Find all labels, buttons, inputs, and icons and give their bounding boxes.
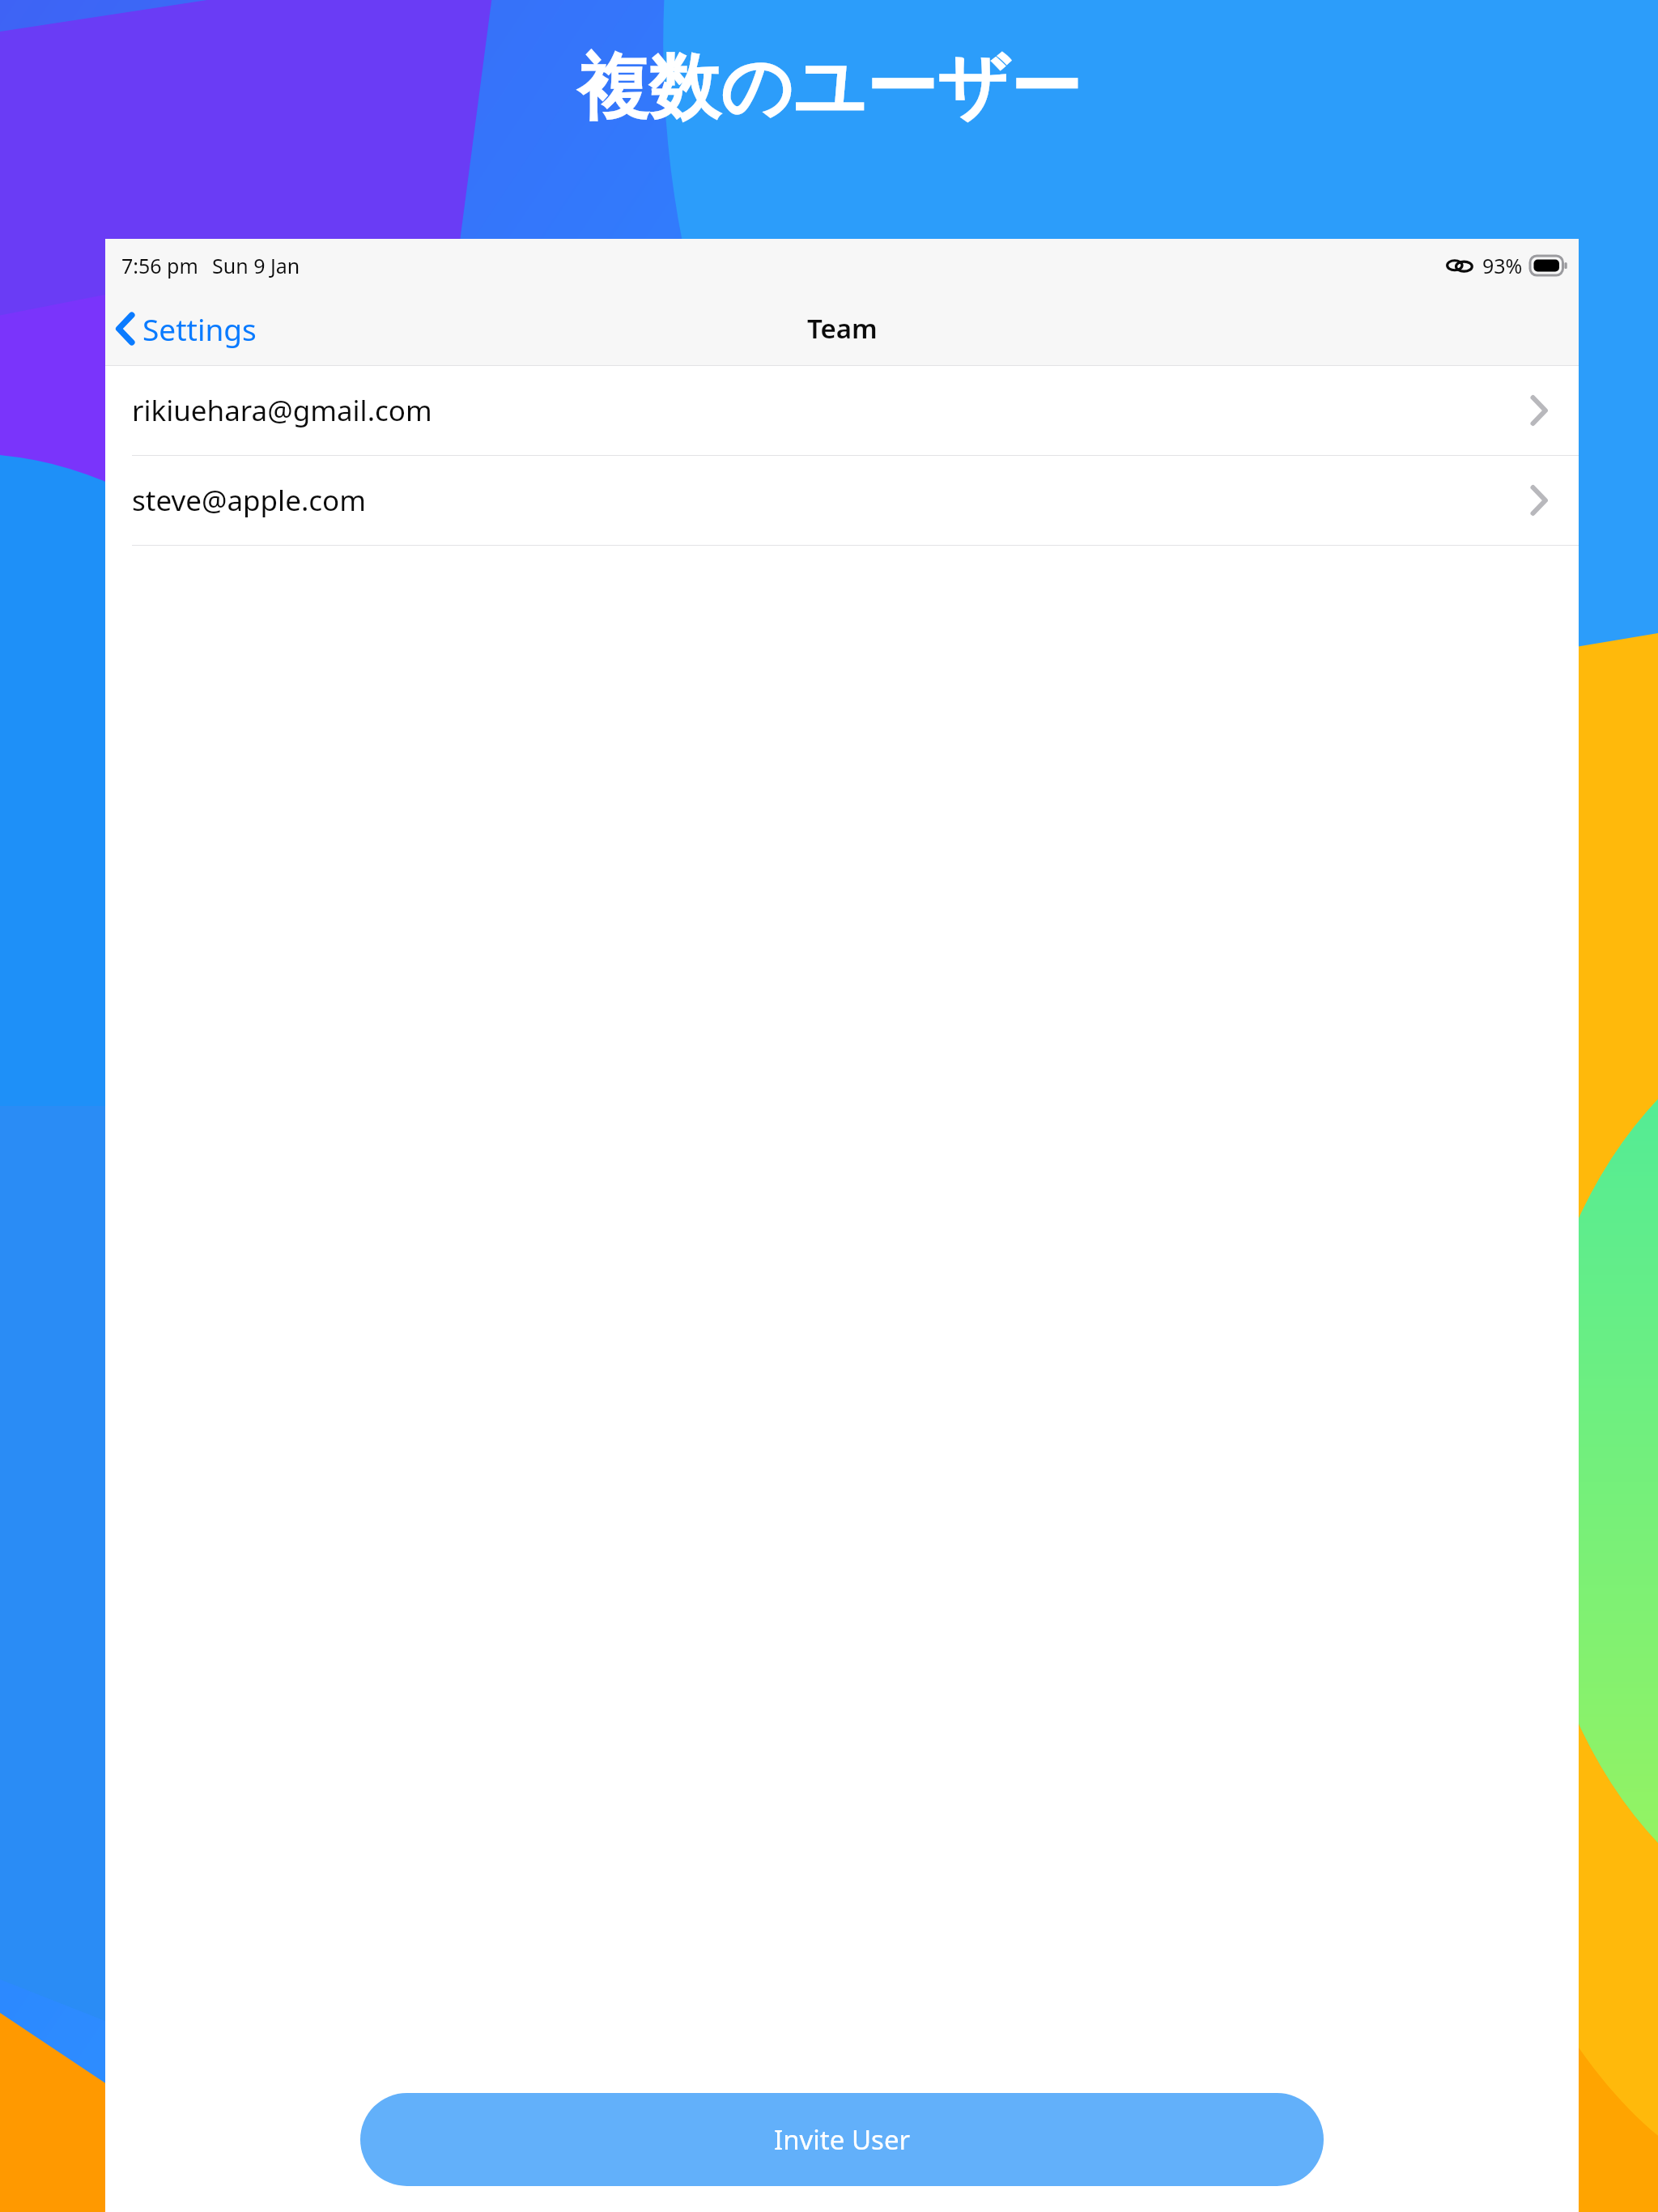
button[interactable]: steve@apple.com (105, 456, 1579, 545)
staticText: steve@apple.com (132, 481, 366, 520)
staticText: 複数のユーザー (577, 43, 1082, 133)
staticText: Sun 9 Jan (212, 252, 300, 279)
button[interactable]: Settings (115, 308, 257, 349)
staticText: Invite User (774, 2121, 911, 2158)
other: Open details (1530, 485, 1548, 516)
staticText: 7:56 pm (121, 252, 198, 279)
other: Open details (1530, 395, 1548, 426)
staticText: rikiuehara@gmail.com (132, 391, 432, 430)
button[interactable]: rikiuehara@gmail.com (105, 366, 1579, 455)
staticText: 93% (1482, 252, 1523, 279)
button[interactable]: Invite User (360, 2093, 1324, 2186)
staticText: Team (807, 310, 878, 347)
staticText: Settings (142, 308, 257, 349)
